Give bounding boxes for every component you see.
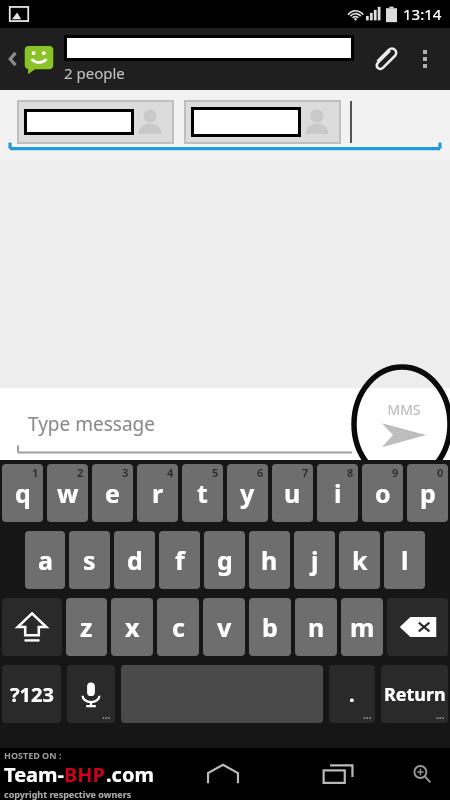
- button[interactable]: x: [111, 598, 153, 656]
- button[interactable]: Home: [196, 748, 250, 800]
- staticText: Team-: [4, 761, 64, 788]
- staticText: e: [105, 476, 120, 510]
- button[interactable]: o: [362, 464, 403, 522]
- staticText: ...: [436, 708, 445, 722]
- button[interactable]: i: [317, 464, 358, 522]
- button[interactable]: p: [407, 464, 448, 522]
- staticText: BHP: [64, 761, 106, 788]
- staticText: 3: [122, 465, 129, 480]
- staticText: t: [197, 476, 208, 510]
- staticText: 5: [212, 465, 219, 480]
- button[interactable]: j: [294, 531, 335, 589]
- staticText: ...: [102, 708, 111, 722]
- staticText: 6: [257, 465, 264, 480]
- staticText: d: [127, 543, 143, 577]
- staticText: n: [308, 610, 325, 644]
- staticText: r: [152, 476, 164, 510]
- button[interactable]: Voice input: [67, 665, 115, 723]
- staticText: 9: [392, 465, 399, 480]
- button[interactable]: d: [114, 531, 155, 589]
- staticText: MMS: [387, 400, 421, 419]
- button[interactable]: t: [182, 464, 223, 522]
- staticText: ...: [363, 708, 372, 722]
- button[interactable]: Backspace: [387, 598, 448, 656]
- button[interactable]: h: [249, 531, 290, 589]
- button[interactable]: [18, 101, 173, 143]
- button[interactable]: e: [92, 464, 133, 522]
- staticText: 4: [167, 465, 174, 480]
- staticText: m: [350, 610, 375, 644]
- staticText: ?123: [10, 681, 54, 708]
- button[interactable]: b: [249, 598, 291, 656]
- button[interactable]: ?123: [2, 665, 61, 723]
- button[interactable]: s: [69, 531, 110, 589]
- button[interactable]: z: [66, 598, 107, 656]
- staticText: f: [175, 543, 185, 577]
- staticText: z: [80, 610, 93, 644]
- button[interactable]: w: [47, 464, 88, 522]
- button[interactable]: c: [157, 598, 199, 656]
- staticText: u: [284, 476, 301, 510]
- staticText: j: [311, 543, 319, 577]
- button[interactable]: Send MMS: [358, 388, 450, 460]
- button[interactable]: Type message: [0, 388, 358, 460]
- button[interactable]: a: [25, 531, 65, 589]
- button[interactable]: y: [227, 464, 268, 522]
- button[interactable]: r: [137, 464, 178, 522]
- button[interactable]: More options: [406, 40, 444, 78]
- staticText: h: [261, 543, 278, 577]
- button[interactable]: m: [341, 598, 383, 656]
- staticText: a: [38, 543, 53, 577]
- button[interactable]: Recent apps: [312, 748, 366, 800]
- button[interactable]: Shift: [2, 598, 62, 656]
- button[interactable]: [185, 101, 340, 143]
- staticText: b: [262, 610, 278, 644]
- staticText: 1: [32, 465, 39, 480]
- staticText: s: [83, 543, 96, 577]
- staticText: o: [375, 476, 391, 510]
- staticText: 8: [347, 465, 354, 480]
- staticText: 13:14: [403, 4, 442, 24]
- button[interactable]: f: [159, 531, 200, 589]
- staticText: HOSTED ON :: [4, 749, 62, 761]
- button[interactable]: n: [295, 598, 337, 656]
- staticText: w: [57, 476, 79, 510]
- staticText: Return: [384, 682, 446, 707]
- staticText: 2: [77, 465, 84, 480]
- staticText: k: [352, 543, 368, 577]
- staticText: .com: [106, 761, 154, 788]
- staticText: copyright respective owners: [4, 788, 132, 800]
- button[interactable]: v: [203, 598, 245, 656]
- staticText: y: [240, 476, 255, 510]
- button[interactable]: q: [2, 464, 43, 522]
- staticText: Type message: [28, 411, 155, 437]
- staticText: 0: [437, 465, 444, 480]
- staticText: p: [420, 476, 436, 510]
- staticText: l: [401, 543, 409, 577]
- staticText: c: [172, 610, 185, 644]
- staticText: .: [349, 681, 355, 708]
- staticText: q: [15, 476, 31, 510]
- button[interactable]: l: [384, 531, 425, 589]
- staticText: i: [334, 476, 342, 510]
- button[interactable]: k: [339, 531, 380, 589]
- staticText: 7: [302, 465, 309, 480]
- button[interactable]: g: [204, 531, 245, 589]
- staticText: x: [125, 610, 140, 644]
- button[interactable]: u: [272, 464, 313, 522]
- staticText: v: [217, 610, 232, 644]
- button[interactable]: .: [329, 665, 375, 723]
- button[interactable]: Return: [381, 665, 448, 723]
- button[interactable]: Back to conversations: [6, 42, 58, 76]
- button[interactable]: Search: [402, 754, 442, 794]
- staticText: 2 people: [64, 63, 125, 83]
- button[interactable]: Attach: [362, 37, 406, 81]
- staticText: g: [217, 543, 233, 577]
